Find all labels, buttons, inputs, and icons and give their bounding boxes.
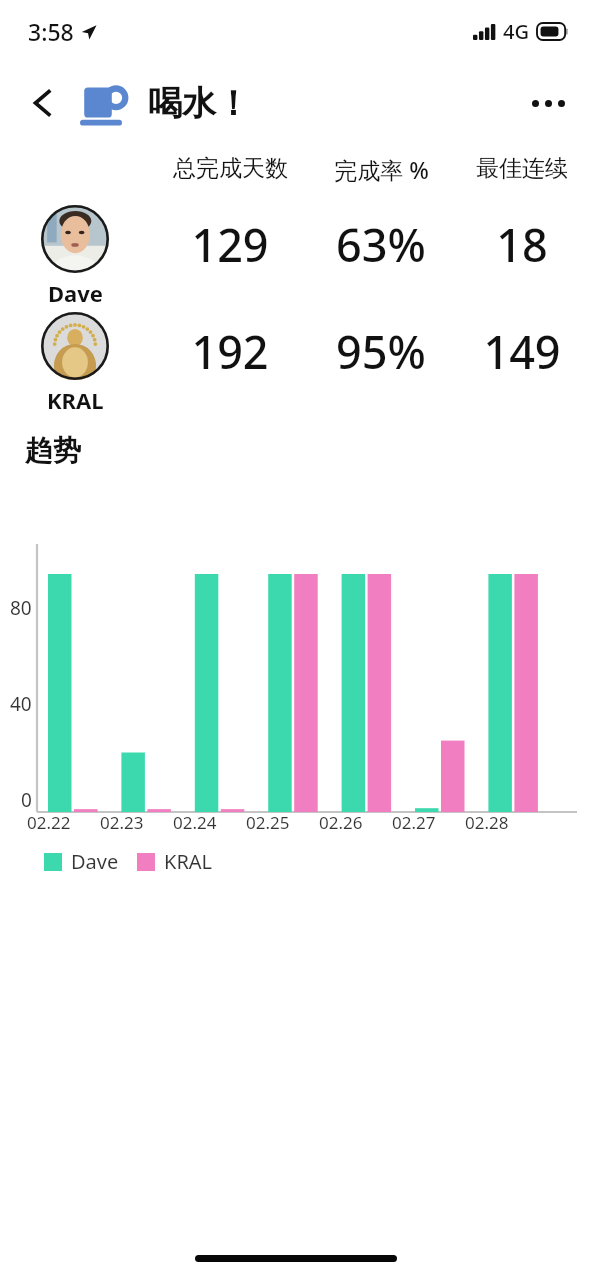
staticText: 18 — [496, 214, 548, 275]
staticText: 02.25 — [246, 811, 290, 834]
staticText: 40 — [10, 691, 32, 717]
staticText: 02.22 — [27, 811, 71, 834]
staticText: 4G — [503, 18, 529, 45]
staticText: 完成率 % — [334, 154, 429, 185]
staticText: KRAL — [164, 848, 213, 875]
staticText: Dave — [71, 848, 119, 875]
button[interactable]: Back — [16, 76, 70, 130]
staticText: 最佳连续 — [476, 154, 568, 183]
staticText: 0 — [21, 787, 32, 813]
staticText: 02.28 — [465, 811, 509, 834]
staticText: 02.26 — [319, 811, 363, 834]
button[interactable]: More options — [519, 74, 577, 132]
staticText: 129 — [191, 214, 269, 275]
button[interactable]: Dave — [0, 205, 591, 308]
staticText: 149 — [483, 321, 561, 382]
staticText: 02.23 — [100, 811, 144, 834]
staticText: 喝水！ — [148, 82, 250, 125]
staticText: Dave — [48, 278, 103, 308]
button[interactable]: KRAL — [0, 312, 591, 415]
staticText: KRAL — [47, 385, 104, 415]
staticText: 总完成天数 — [173, 154, 288, 183]
staticText: 95% — [336, 321, 426, 382]
staticText: 02.24 — [173, 811, 217, 834]
staticText: 63% — [336, 214, 426, 275]
staticText: 02.27 — [392, 811, 436, 834]
staticText: 192 — [191, 321, 269, 382]
staticText: 趋势 — [25, 433, 81, 468]
staticText: 3:58 — [28, 16, 74, 47]
staticText: 80 — [10, 595, 32, 621]
